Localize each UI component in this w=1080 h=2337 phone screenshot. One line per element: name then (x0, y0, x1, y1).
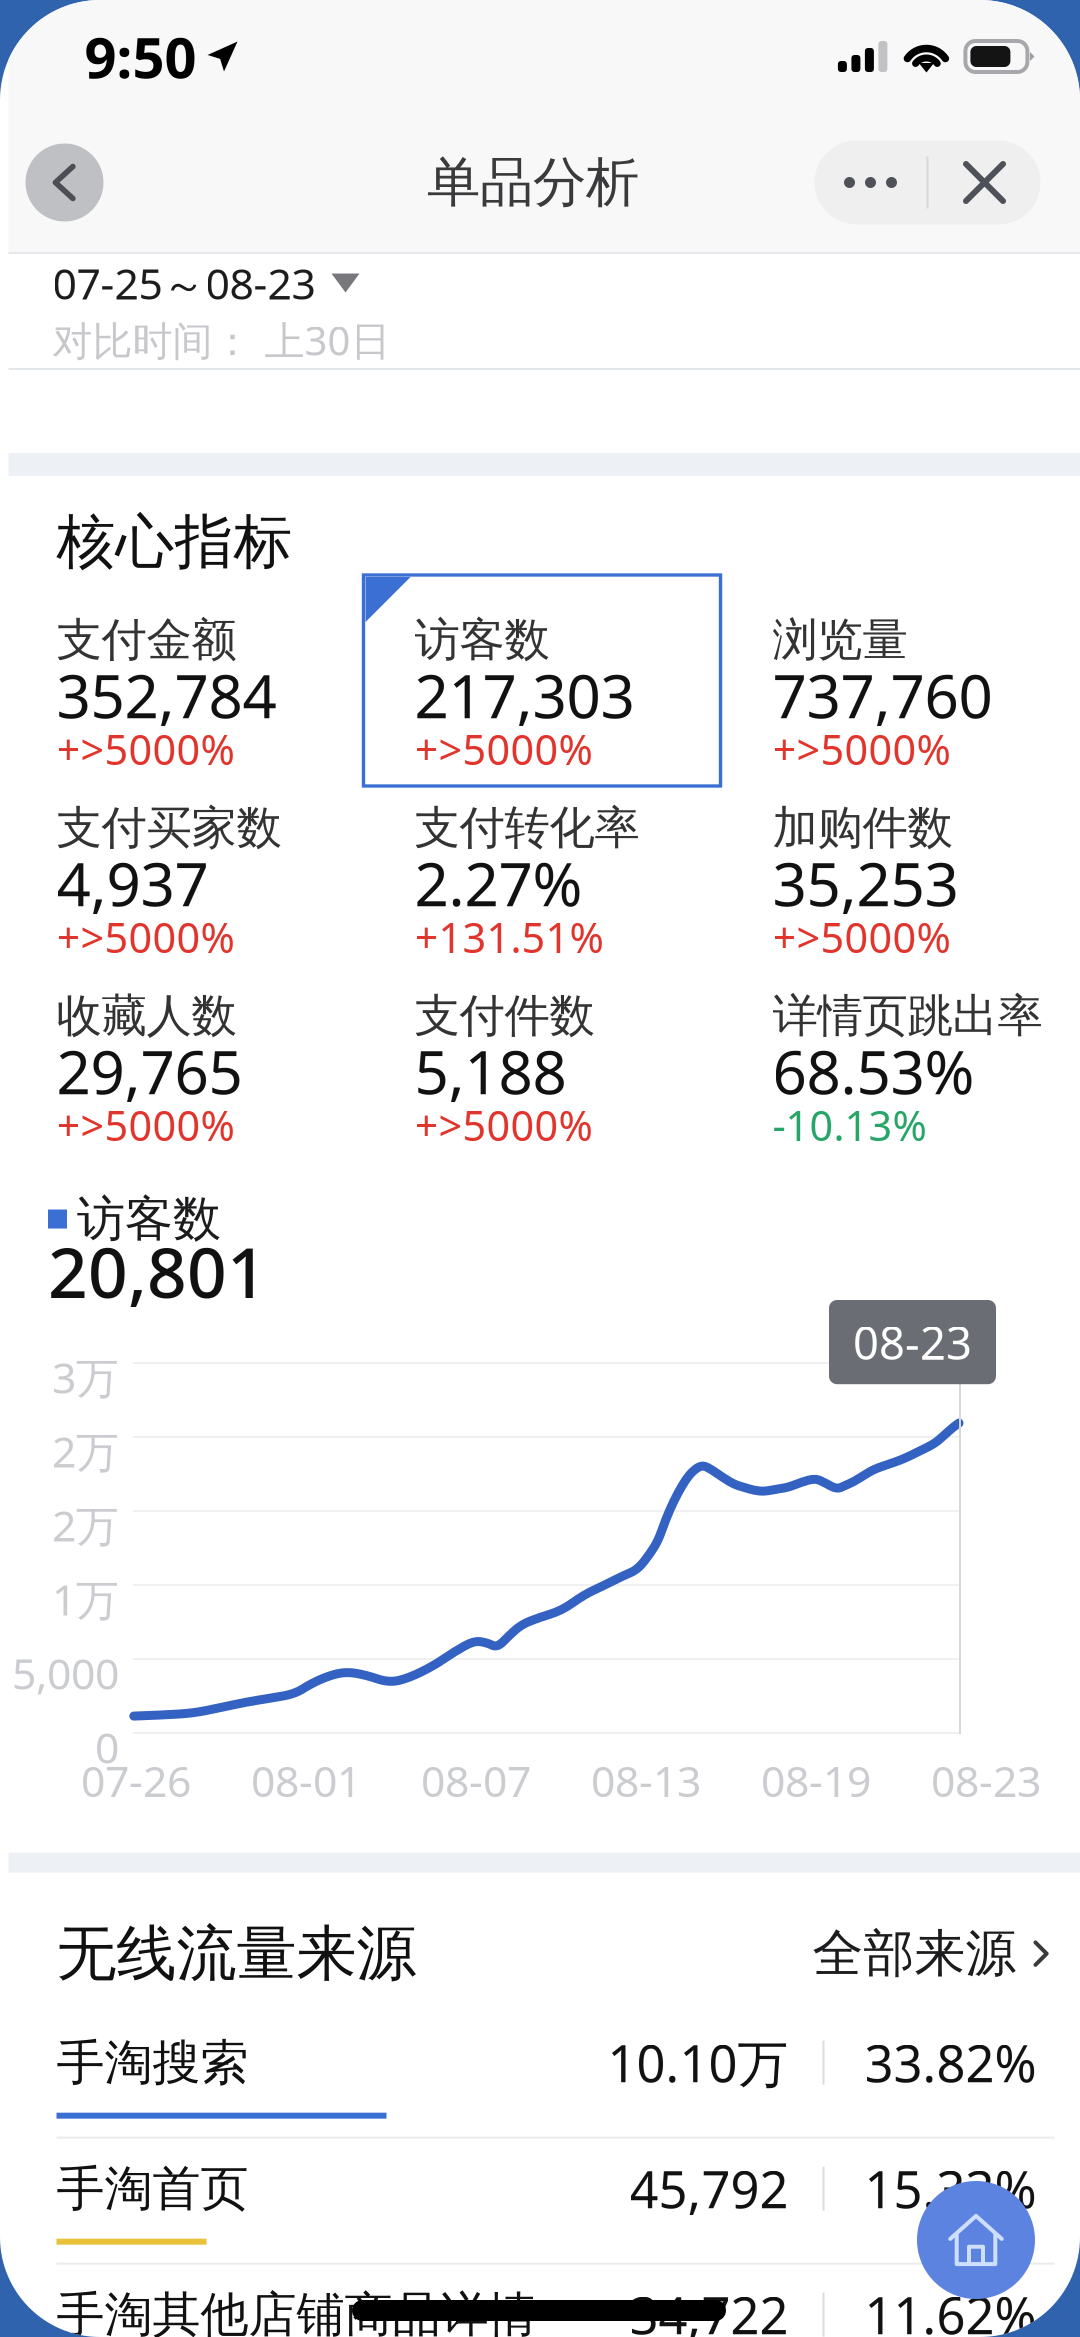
staticText: 支付转化率 (414, 800, 639, 856)
staticText: 08-19 (761, 1752, 871, 1809)
staticText: +>5000% (56, 722, 234, 776)
button[interactable]: 全部来源 (812, 1922, 1054, 1985)
staticText: 29,765 (56, 1031, 242, 1111)
staticText: 352,784 (56, 655, 276, 735)
button[interactable]: 手淘首页 (56, 2139, 1054, 2263)
staticText: 5,188 (414, 1031, 566, 1111)
staticText: 68.53% (772, 1031, 974, 1111)
staticText: 07-25～08-23 (52, 255, 315, 311)
staticText: 支付件数 (414, 988, 594, 1044)
staticText: 无线流量来源 (56, 1917, 416, 1990)
staticText: +>5000% (56, 910, 234, 964)
staticText: 20,801 (48, 1225, 267, 1317)
staticText: +>5000% (772, 722, 950, 776)
button[interactable]: 支付金额 (56, 616, 414, 804)
staticText: 浏览量 (772, 612, 907, 668)
staticText: 手淘其他店铺商品详情 (56, 2285, 536, 2337)
button[interactable]: 支付件数 (414, 992, 772, 1180)
staticText: 访客数 (77, 1189, 221, 1248)
staticText: 35,253 (772, 843, 958, 923)
staticText: 11.62% (864, 2281, 1036, 2337)
button[interactable]: 详情页跳出率 (772, 992, 1080, 1180)
staticText: 对比时间： 上30日 (52, 313, 390, 366)
staticText: 1万 (52, 1571, 119, 1627)
staticText: 手淘首页 (56, 2159, 248, 2218)
staticText: 全部来源 (812, 1922, 1016, 1985)
staticText: 34,722 (629, 2281, 788, 2337)
staticText: 核心指标 (56, 506, 292, 578)
button[interactable]: 访客数 (414, 616, 772, 804)
staticText: 访客数 (414, 612, 549, 668)
button[interactable]: Close (928, 140, 1040, 224)
button[interactable]: 支付买家数 (56, 804, 414, 992)
staticText: 33.82% (864, 2029, 1036, 2096)
staticText: 2万 (52, 1497, 119, 1553)
staticText: +>5000% (772, 910, 950, 964)
staticText: 07-26 (81, 1752, 191, 1809)
button[interactable]: Back (25, 143, 103, 221)
staticText: 手淘搜索 (56, 2033, 248, 2092)
button[interactable]: Home (917, 2181, 1035, 2299)
staticText: 2.27% (414, 843, 582, 923)
staticText: 支付买家数 (56, 800, 281, 856)
staticText: 08-13 (591, 1752, 701, 1809)
staticText: +>5000% (414, 1098, 592, 1152)
staticText: 5,000 (12, 1645, 119, 1701)
staticText: 08-23 (853, 1312, 972, 1372)
button[interactable]: 07-25～08-23 (52, 254, 359, 312)
staticText: 加购件数 (772, 800, 952, 856)
staticText: 单品分析 (427, 150, 639, 215)
staticText: 0 (95, 1719, 119, 1775)
staticText: 15.33% (864, 2155, 1036, 2222)
staticText: 2万 (52, 1423, 119, 1479)
staticText: 08-07 (421, 1752, 531, 1809)
staticText: 收藏人数 (56, 988, 236, 1044)
staticText: +>5000% (56, 1098, 234, 1152)
staticText: 3万 (52, 1349, 119, 1405)
staticText: 08-01 (251, 1752, 361, 1809)
button[interactable]: More options (814, 140, 926, 224)
staticText: 737,760 (772, 655, 992, 735)
staticText: 9:50 (84, 19, 196, 94)
staticText: 4,937 (56, 843, 208, 923)
button[interactable]: 加购件数 (772, 804, 1080, 992)
staticText: 10.10万 (607, 2029, 788, 2096)
staticText: 详情页跳出率 (772, 988, 1042, 1044)
staticText: 支付金额 (56, 612, 236, 668)
staticText: 45,792 (629, 2155, 788, 2222)
staticText: 08-23 (931, 1752, 1041, 1809)
button[interactable]: 浏览量 (772, 616, 1080, 804)
staticText: +>5000% (414, 722, 592, 776)
staticText: +131.51% (414, 910, 603, 964)
button[interactable]: 手淘搜索 (56, 2013, 1054, 2137)
button[interactable]: 收藏人数 (56, 992, 414, 1180)
staticText: -10.13% (772, 1098, 926, 1152)
button[interactable]: 支付转化率 (414, 804, 772, 992)
staticText: 217,303 (414, 655, 634, 735)
button[interactable]: 手淘其他店铺商品详情 (56, 2265, 1054, 2337)
